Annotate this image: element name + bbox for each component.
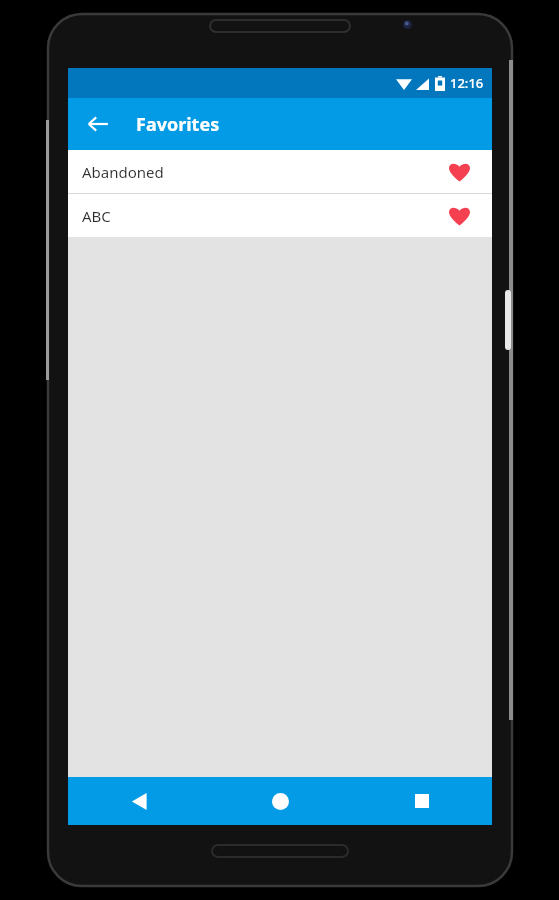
staticText: Abandoned: [82, 162, 444, 182]
button[interactable]: Favorite: [444, 157, 474, 187]
staticText: Favorites: [136, 112, 220, 137]
button[interactable]: Home: [210, 777, 351, 825]
staticText: 12:16: [450, 74, 484, 92]
button[interactable]: Favorite: [444, 201, 474, 231]
button[interactable]: ABC: [68, 194, 492, 237]
button[interactable]: Back: [68, 777, 210, 825]
button[interactable]: Back: [76, 102, 120, 146]
button[interactable]: Abandoned: [68, 150, 492, 193]
button[interactable]: Recent apps: [351, 777, 492, 825]
staticText: ABC: [82, 206, 444, 226]
